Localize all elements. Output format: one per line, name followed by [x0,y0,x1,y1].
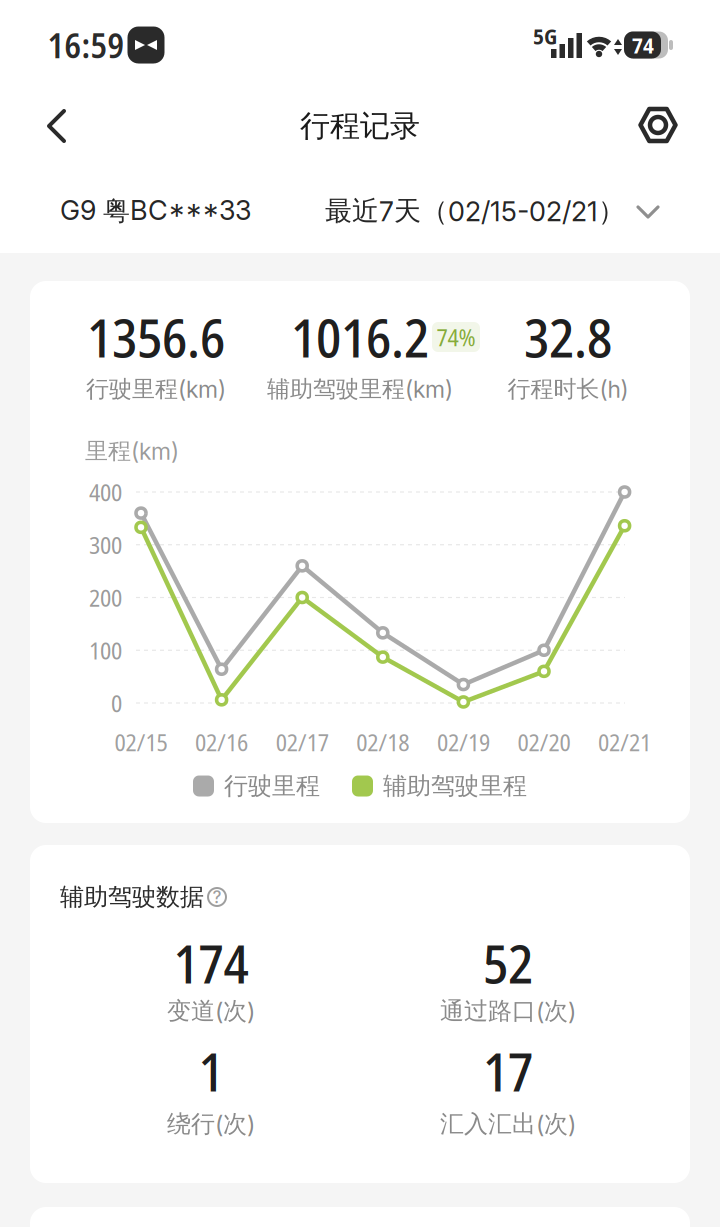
staticText: 17 [483,1035,533,1107]
staticText: 绕行(次) [167,1109,255,1139]
staticText: 300 [89,528,122,561]
staticText: G9 粤BC***33 [60,194,251,228]
staticText: 52 [483,927,533,999]
staticText: 16:59 [47,22,124,68]
staticText: 74 [632,30,654,60]
staticText: 02/19 [437,726,490,758]
staticText: 汇入汇出(次) [440,1109,576,1139]
staticText: 最近7天（02/15-02/21） [325,194,625,228]
staticText: 32.8 [524,301,612,373]
button[interactable] [26,96,86,156]
staticText: 74% [436,321,475,353]
button[interactable] [628,95,688,155]
staticText: 通过路口(次) [440,996,576,1026]
staticText: 200 [89,581,122,614]
staticText: 行程时长(h) [507,374,628,403]
staticText: 里程(km) [85,436,179,465]
staticText: ? [212,887,221,907]
staticText: 174 [173,927,248,999]
staticText: 02/18 [356,726,409,758]
button[interactable]: 最近7天（02/15-02/21） [325,179,661,243]
staticText: 行驶里程(km) [86,374,226,403]
staticText: 行驶里程 [224,771,320,801]
staticText: 辅助驾驶里程(km) [267,374,453,403]
staticText: 辅助驾驶里程 [383,771,527,801]
button[interactable]: ? [195,875,239,919]
staticText: 02/15 [114,726,167,758]
staticText: 0 [111,687,122,719]
staticText: 辅助驾驶数据 [60,882,204,912]
button[interactable]: G9 粤BC***33 [60,179,320,243]
staticText: 5G [533,21,557,51]
staticText: 变道(次) [167,996,255,1026]
staticText: 1356.6 [87,301,225,373]
staticText: 1 [198,1035,223,1107]
staticText: 02/20 [517,726,570,758]
staticText: 100 [89,634,122,667]
staticText: 02/16 [195,726,248,758]
staticText: 行程记录 [300,107,420,145]
staticText: 400 [89,476,122,508]
staticText: 02/21 [598,726,651,758]
staticText: 1016.2 [291,301,429,373]
staticText: 02/17 [276,726,329,758]
